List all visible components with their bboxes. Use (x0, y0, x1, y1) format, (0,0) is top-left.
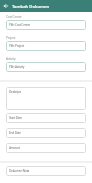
staticText: Start Date (9, 116, 22, 120)
staticText: Pilih Project (9, 44, 24, 48)
staticText: Project (6, 36, 16, 40)
button[interactable]: Deskripsi (6, 87, 86, 110)
staticText: Tambah Dokumen (12, 3, 50, 9)
staticText: Amount (9, 146, 20, 150)
staticText: Deskripsi (9, 90, 21, 94)
staticText: Activity (6, 57, 16, 61)
button[interactable]: End Date (6, 128, 86, 138)
staticText: Pilih Cost Center (9, 23, 31, 27)
button[interactable]: Pilih Cost Center (6, 20, 86, 30)
staticText: End Date (9, 131, 21, 135)
button[interactable]: Pilih Activity (6, 62, 86, 72)
button[interactable]: Amount (6, 143, 86, 153)
button[interactable]: Dokumen Nota (6, 166, 86, 176)
staticText: Pilih Activity (9, 65, 25, 69)
staticText: Dokumen Nota (9, 169, 30, 173)
button[interactable]: Pilih Project (6, 41, 86, 51)
button[interactable]: Start Date (6, 113, 86, 123)
button[interactable]: Back (0, 0, 12, 12)
staticText: Cost Center (6, 15, 22, 19)
